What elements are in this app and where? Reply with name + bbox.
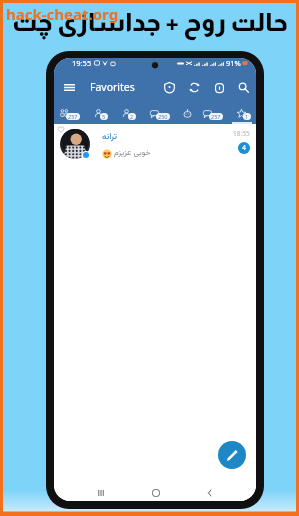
button[interactable]: New message (218, 441, 246, 469)
button[interactable]: 2 (122, 107, 139, 120)
staticText: حالت روح + جداسازی چت (12, 8, 288, 36)
staticText: 4 (242, 143, 247, 153)
button[interactable]: Recents (92, 484, 109, 501)
button[interactable]: ترانه (54, 124, 256, 160)
staticText: Favorites (90, 80, 135, 94)
button[interactable]: 257 (60, 107, 83, 120)
staticText: 19:55 (72, 58, 92, 68)
button[interactable]: Lock (211, 79, 227, 95)
staticText: 250 (158, 113, 168, 120)
staticText: 91% (226, 58, 241, 68)
staticText: 18:55 (233, 129, 250, 138)
button[interactable]: Menu (61, 79, 77, 95)
staticText: خوبی عزیزم (114, 147, 151, 160)
button[interactable]: Home (147, 484, 164, 501)
button[interactable]: Search (235, 79, 251, 95)
button[interactable]: Ghost mode (161, 79, 177, 95)
staticText: hack-cheat.org (6, 4, 119, 24)
staticText: 257 (211, 113, 221, 120)
button[interactable] (183, 107, 192, 120)
staticText: 257 (68, 113, 78, 120)
staticText: 2 (130, 113, 134, 120)
button[interactable]: 257 (203, 107, 226, 120)
button[interactable]: Back (201, 484, 218, 501)
button[interactable]: 1 (237, 107, 254, 120)
button[interactable]: 250 (150, 107, 173, 120)
button[interactable]: 5 (94, 107, 111, 120)
button[interactable]: Refresh (186, 79, 202, 95)
staticText: 1 (245, 113, 249, 120)
staticText: 5 (102, 113, 106, 120)
staticText: ترانه (102, 130, 117, 144)
